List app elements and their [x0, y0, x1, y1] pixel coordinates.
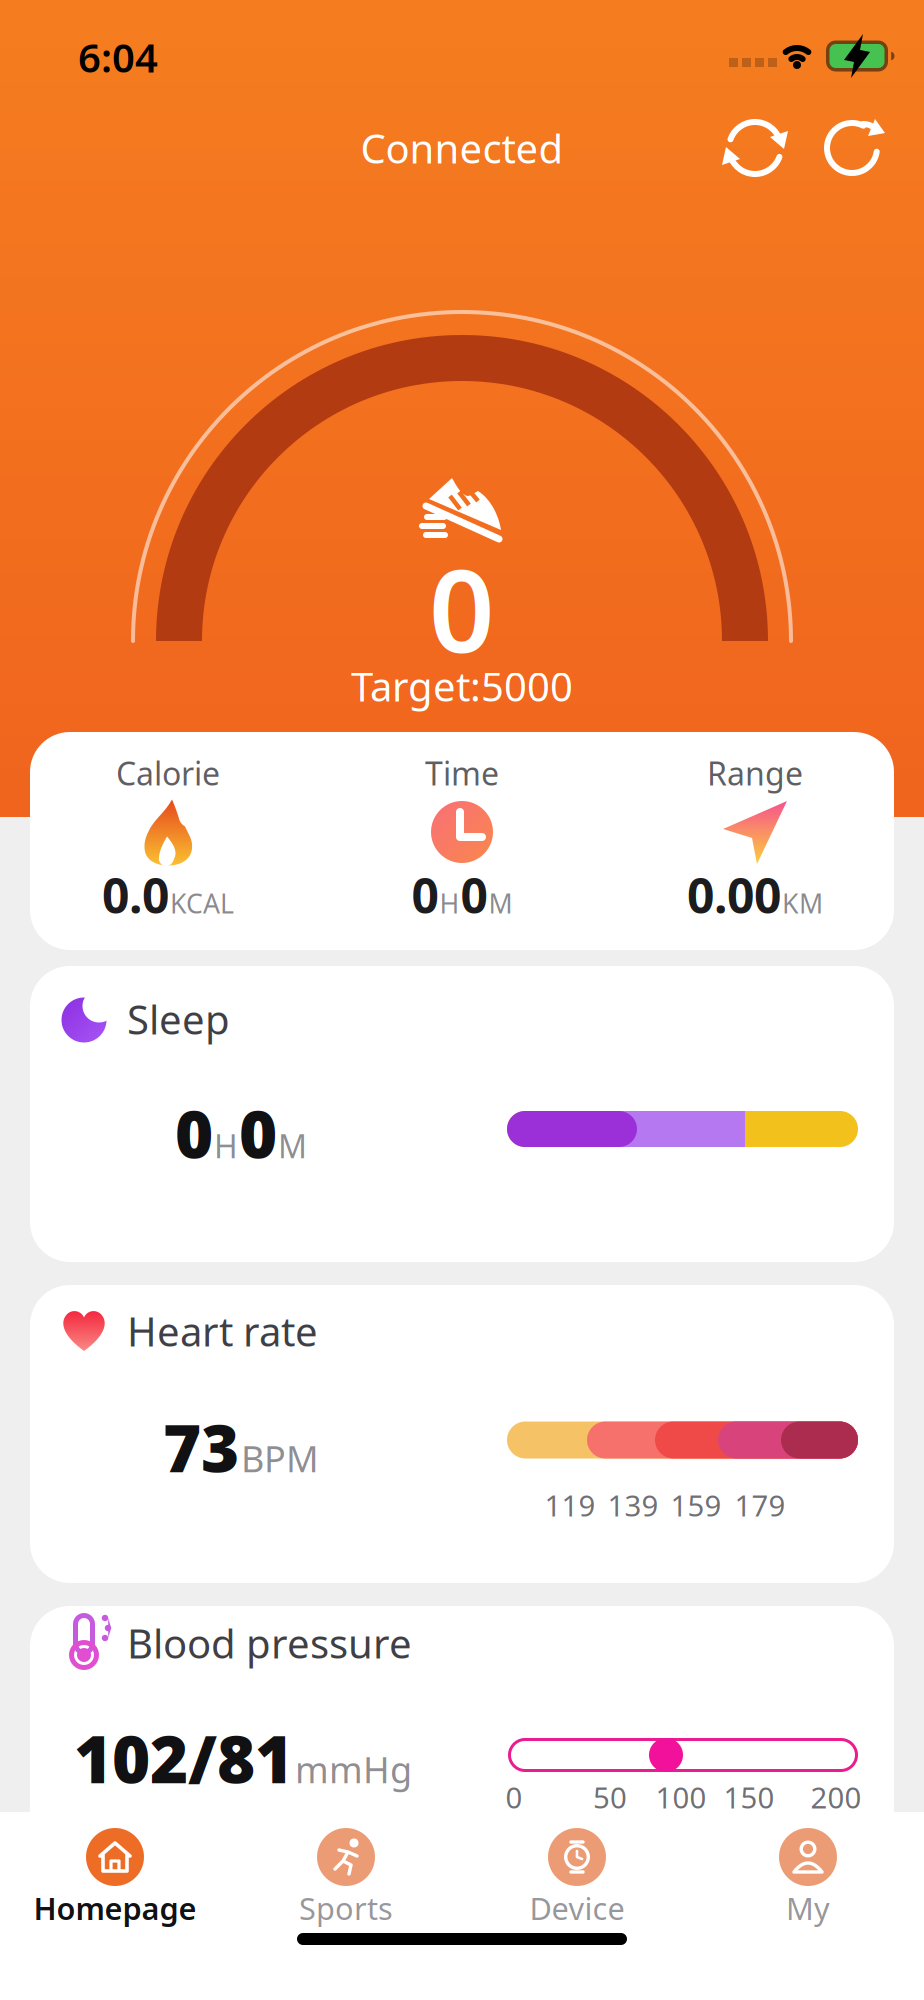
staticText: 200 — [810, 1777, 861, 1816]
staticText: M — [278, 1125, 307, 1167]
staticText: 0 — [429, 532, 495, 684]
staticText: Sports — [299, 1888, 393, 1928]
staticText: 6:04 — [78, 30, 158, 83]
staticText: 50 — [593, 1777, 627, 1816]
button[interactable]: Refresh — [819, 115, 885, 181]
staticText: 73 — [163, 1404, 239, 1490]
staticText: 0 — [460, 863, 487, 927]
button[interactable]: My — [690, 1808, 924, 1934]
staticText: Sleep — [127, 992, 230, 1045]
staticText: Calorie — [116, 752, 220, 794]
staticText: 0 — [239, 1090, 277, 1176]
staticText: 159 — [670, 1485, 721, 1524]
staticText: Blood pressure — [127, 1616, 412, 1669]
staticText: Homepage — [33, 1888, 196, 1928]
staticText: Device — [529, 1888, 624, 1928]
staticText: 0 — [175, 1090, 213, 1176]
staticText: Range — [707, 752, 803, 794]
staticText: H — [214, 1125, 238, 1167]
staticText: KM — [782, 886, 823, 921]
staticText: 0 — [411, 863, 438, 927]
staticText: 179 — [734, 1485, 785, 1524]
staticText: KCAL — [170, 886, 234, 921]
staticText: 139 — [607, 1485, 658, 1524]
staticText: Time — [425, 752, 499, 794]
staticText: BPM — [241, 1434, 319, 1482]
staticText: mmHg — [295, 1745, 412, 1793]
staticText: 102/81 — [74, 1715, 293, 1801]
staticText: M — [488, 886, 512, 921]
button[interactable]: Sync — [722, 115, 788, 181]
staticText: 119 — [544, 1485, 595, 1524]
staticText: 150 — [723, 1777, 774, 1816]
button[interactable]: Sports — [228, 1808, 464, 1934]
staticText: 0.0 — [102, 863, 169, 927]
staticText: 0.00 — [687, 863, 781, 927]
button[interactable]: Device — [459, 1808, 695, 1934]
staticText: Target:5000 — [351, 659, 573, 712]
staticText: Heart rate — [127, 1304, 318, 1357]
staticText: H — [439, 886, 459, 921]
staticText: My — [786, 1888, 830, 1928]
button[interactable]: Homepage — [0, 1808, 233, 1934]
staticText: Connected — [360, 121, 563, 174]
staticText: 100 — [655, 1777, 706, 1816]
staticText: 0 — [505, 1777, 522, 1816]
